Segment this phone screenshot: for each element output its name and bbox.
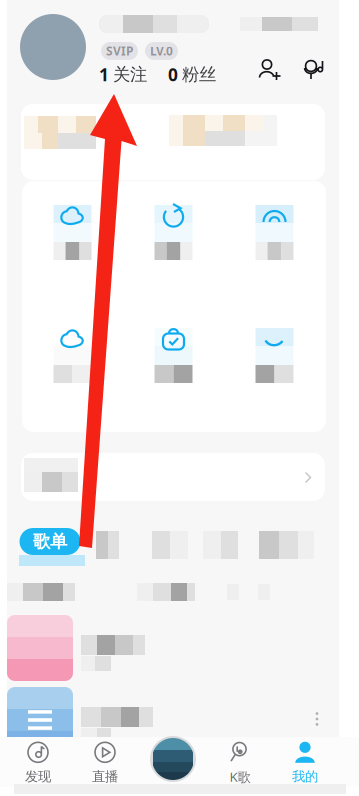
button[interactable]: K歌 bbox=[207, 741, 273, 785]
button[interactable]: 我的 bbox=[272, 741, 338, 785]
button[interactable]: 发现 bbox=[5, 741, 71, 785]
button[interactable] bbox=[123, 205, 224, 261]
button[interactable] bbox=[123, 328, 224, 384]
button[interactable] bbox=[21, 453, 325, 501]
staticText: 粉丝 bbox=[182, 64, 216, 85]
button[interactable] bbox=[22, 205, 123, 261]
button[interactable]: Add friend bbox=[258, 58, 282, 82]
staticText: 关注 bbox=[113, 64, 147, 85]
staticText: SVIP bbox=[106, 43, 133, 59]
button[interactable]: 0 bbox=[168, 63, 216, 86]
button[interactable]: Profile photo bbox=[20, 14, 86, 80]
button[interactable] bbox=[224, 205, 325, 261]
button[interactable] bbox=[224, 328, 325, 384]
button[interactable]: Now playing bbox=[150, 736, 196, 782]
staticText: 0 bbox=[168, 63, 178, 86]
button[interactable] bbox=[96, 531, 119, 559]
button[interactable] bbox=[21, 104, 325, 180]
button[interactable] bbox=[7, 615, 339, 685]
button[interactable] bbox=[22, 328, 123, 384]
button[interactable] bbox=[259, 531, 314, 559]
staticText: K歌 bbox=[229, 768, 250, 785]
button[interactable] bbox=[7, 687, 339, 757]
staticText: 直播 bbox=[92, 768, 118, 785]
button[interactable]: 1 bbox=[99, 63, 147, 86]
button[interactable] bbox=[203, 531, 238, 559]
button[interactable]: 歌单 bbox=[19, 528, 80, 555]
button[interactable] bbox=[152, 531, 188, 559]
staticText: 我的 bbox=[292, 768, 318, 785]
button[interactable]: Voice search bbox=[302, 58, 326, 82]
button[interactable]: 直播 bbox=[72, 741, 138, 785]
staticText: 发现 bbox=[25, 768, 51, 785]
staticText: LV.0 bbox=[150, 43, 173, 59]
staticText: 1 bbox=[99, 63, 109, 86]
staticText: 歌单 bbox=[33, 531, 67, 552]
